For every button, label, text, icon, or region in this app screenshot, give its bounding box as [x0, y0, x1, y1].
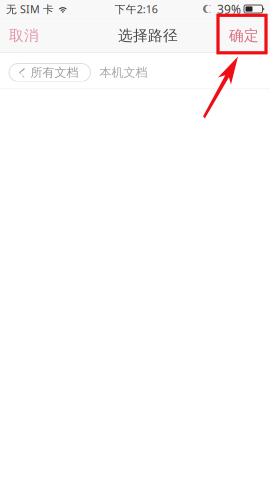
staticText: 无 SIM 卡 — [6, 2, 54, 16]
button[interactable]: 所有文档 — [9, 63, 90, 81]
button[interactable]: 取消 — [0, 18, 47, 52]
staticText: 39% — [217, 1, 241, 17]
staticText: 本机文档 — [99, 65, 147, 80]
button[interactable]: 确定 — [221, 18, 270, 52]
staticText: 下午2:16 — [115, 2, 158, 16]
staticText: 确定 — [229, 26, 259, 44]
staticText: 选择路径 — [118, 26, 178, 44]
staticText: 取消 — [9, 26, 39, 44]
staticText: 所有文档 — [30, 65, 78, 80]
button[interactable]: 本机文档 — [99, 63, 147, 81]
